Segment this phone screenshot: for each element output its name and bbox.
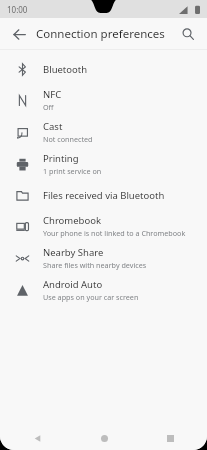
staticText: 1 print service on bbox=[43, 166, 102, 176]
staticText: Off bbox=[43, 102, 54, 112]
staticText: Your phone is not linked to a Chromebook bbox=[43, 228, 186, 238]
staticText: Connection preferences bbox=[36, 26, 165, 42]
staticText: NFC bbox=[43, 88, 62, 101]
staticText: Chromebook bbox=[43, 214, 102, 227]
button[interactable]: Bluetooth bbox=[0, 54, 207, 84]
button[interactable]: Files received via Bluetooth bbox=[0, 180, 207, 210]
staticText: Printing bbox=[43, 152, 79, 165]
button[interactable]: Nearby Share bbox=[0, 242, 207, 274]
button[interactable]: Back bbox=[6, 21, 32, 47]
button[interactable]: Search bbox=[175, 21, 201, 47]
button[interactable]: NFC bbox=[0, 84, 207, 116]
staticText: Bluetooth bbox=[43, 63, 88, 76]
staticText: Use apps on your car screen bbox=[43, 292, 139, 302]
button[interactable]: Printing bbox=[0, 148, 207, 180]
staticText: Files received via Bluetooth bbox=[43, 189, 165, 202]
button[interactable]: Chromebook bbox=[0, 210, 207, 242]
staticText: Not connected bbox=[43, 134, 93, 144]
staticText: Nearby Share bbox=[43, 246, 104, 259]
staticText: Android Auto bbox=[43, 278, 103, 291]
button[interactable]: Android Auto bbox=[0, 274, 207, 306]
button[interactable]: Recents bbox=[159, 427, 181, 449]
button[interactable]: Cast bbox=[0, 116, 207, 148]
staticText: 10:00 bbox=[7, 4, 28, 15]
button[interactable]: Home bbox=[93, 427, 115, 449]
staticText: Share files with nearby devices bbox=[43, 260, 147, 270]
button[interactable]: Back bbox=[26, 427, 48, 449]
staticText: Cast bbox=[43, 120, 63, 133]
